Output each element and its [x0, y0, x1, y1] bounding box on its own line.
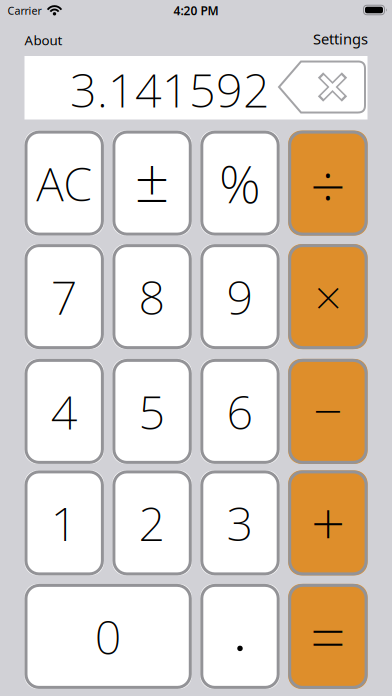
staticText: = [310, 595, 346, 678]
button[interactable]: About [24, 31, 62, 49]
staticText: About [24, 31, 62, 49]
button[interactable]: AC [24, 131, 104, 236]
staticText: % [219, 149, 261, 218]
button[interactable]: × [288, 244, 368, 349]
button[interactable]: 2 [112, 470, 192, 575]
button[interactable]: + [288, 470, 368, 575]
staticText: 9 [226, 266, 253, 328]
button[interactable]: 5 [112, 359, 192, 464]
staticText: 4:20 PM [173, 2, 218, 18]
staticText: × [314, 265, 341, 328]
staticText: ± [135, 137, 170, 219]
button[interactable]: 3 [200, 470, 280, 575]
staticText: Settings [313, 29, 368, 49]
button[interactable]: ÷ [288, 131, 368, 236]
staticText: Carrier [7, 3, 41, 18]
button[interactable]: 4 [24, 359, 104, 464]
button[interactable]: ± [112, 131, 192, 236]
button[interactable] [278, 60, 368, 114]
button[interactable]: % [200, 131, 280, 236]
staticText: 7 [51, 266, 78, 328]
staticText: 4 [51, 380, 78, 442]
staticText: 6 [226, 380, 253, 442]
staticText: 5 [139, 380, 166, 442]
staticText: AC [36, 152, 92, 214]
button[interactable]: 0 [24, 584, 192, 689]
staticText: 8 [139, 266, 166, 328]
button[interactable]: − [288, 359, 368, 464]
button[interactable]: 9 [200, 244, 280, 349]
button[interactable]: 8 [112, 244, 192, 349]
button[interactable]: 6 [200, 359, 280, 464]
button[interactable]: 7 [24, 244, 104, 349]
button[interactable] [200, 584, 280, 689]
staticText: − [313, 375, 343, 444]
staticText: 2 [139, 492, 166, 554]
button[interactable]: = [288, 584, 368, 689]
button[interactable]: Settings [313, 29, 368, 49]
button[interactable]: 1 [24, 470, 104, 575]
staticText: + [311, 483, 345, 563]
staticText: 3.141592 [70, 58, 270, 120]
staticText: 3 [226, 492, 253, 554]
staticText: 1 [51, 492, 78, 554]
staticText: 0 [95, 605, 122, 667]
staticText: ÷ [310, 143, 346, 227]
